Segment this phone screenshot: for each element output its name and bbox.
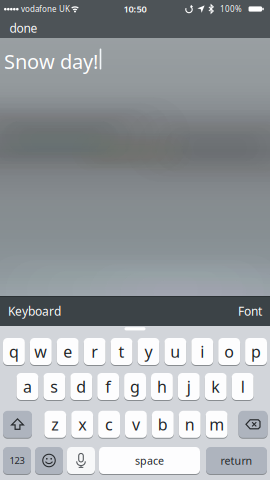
button[interactable]: i (191, 337, 213, 365)
button[interactable]: Emoji (35, 446, 63, 474)
staticText: 100% (220, 4, 242, 14)
staticText: o (224, 341, 234, 362)
button[interactable]: h (151, 372, 173, 400)
staticText: s (50, 376, 58, 397)
button[interactable]: Shift (3, 410, 32, 438)
button[interactable]: space (99, 446, 200, 474)
button[interactable]: return (206, 446, 267, 474)
button[interactable]: b (152, 410, 174, 438)
staticText: h (157, 376, 167, 397)
button[interactable]: t (111, 337, 132, 365)
staticText: Keyboard (8, 303, 61, 319)
button[interactable]: k (205, 372, 227, 400)
button[interactable]: s (43, 372, 65, 400)
staticText: i (200, 341, 204, 362)
button[interactable]: c (98, 410, 120, 438)
button[interactable]: Dictate (67, 446, 95, 474)
staticText: e (63, 341, 72, 362)
staticText: Snow day! (4, 48, 98, 75)
staticText: space (135, 453, 164, 468)
staticText: d (76, 376, 86, 397)
staticText: x (78, 414, 86, 435)
button[interactable]: j (178, 372, 200, 400)
staticText: q (9, 341, 19, 362)
button[interactable]: 123 (3, 446, 31, 474)
staticText: k (211, 376, 220, 397)
staticText: y (144, 341, 152, 362)
staticText: 10:50 (123, 3, 146, 15)
button[interactable]: y (137, 337, 159, 365)
staticText: j (187, 376, 191, 397)
button[interactable]: z (44, 410, 66, 438)
staticText: p (251, 341, 261, 362)
button[interactable]: r (84, 337, 106, 365)
button[interactable]: g (124, 372, 146, 400)
button[interactable]: d (70, 372, 92, 400)
staticText: vodafone UK (21, 4, 70, 14)
button[interactable]: f (97, 372, 119, 400)
staticText: w (34, 341, 47, 362)
button[interactable]: a (16, 372, 38, 400)
button[interactable]: n (179, 410, 201, 438)
staticText: f (105, 376, 111, 397)
button[interactable]: p (245, 337, 267, 365)
button[interactable]: Keyboard (8, 296, 108, 326)
staticText: z (51, 414, 59, 435)
button[interactable]: e (57, 337, 79, 365)
staticText: t (118, 341, 124, 362)
staticText: r (91, 341, 98, 362)
staticText: c (105, 414, 113, 435)
staticText: Font (238, 303, 262, 319)
staticText: n (185, 414, 195, 435)
staticText: m (209, 414, 224, 435)
button[interactable]: w (30, 337, 52, 365)
staticText: 123 (9, 454, 24, 467)
staticText: g (130, 376, 140, 397)
button[interactable]: q (3, 337, 25, 365)
button[interactable]: o (218, 337, 240, 365)
staticText: v (132, 414, 140, 435)
button[interactable]: l (232, 372, 254, 400)
staticText: done (9, 20, 37, 36)
button[interactable]: v (125, 410, 147, 438)
button[interactable]: m (206, 410, 228, 438)
staticText: l (241, 376, 245, 397)
staticText: b (158, 414, 168, 435)
staticText: u (170, 341, 180, 362)
button[interactable]: Font (202, 296, 262, 326)
staticText: return (220, 453, 252, 468)
button[interactable]: u (164, 337, 186, 365)
staticText: a (23, 376, 32, 397)
button[interactable]: x (71, 410, 93, 438)
button[interactable]: done (9, 18, 59, 38)
button[interactable]: Delete (238, 410, 267, 438)
